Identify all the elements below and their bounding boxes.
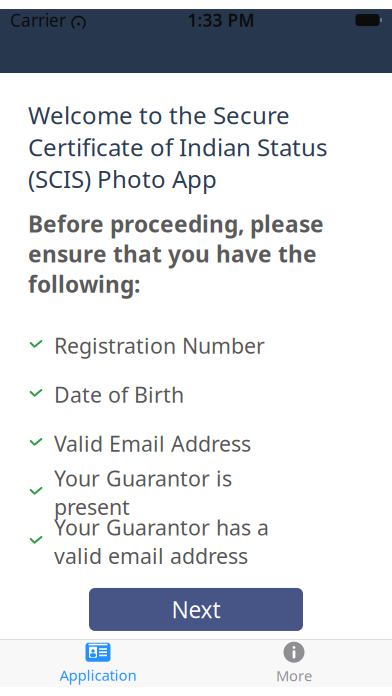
staticText: Before proceeding, please ensure that yo… bbox=[28, 209, 324, 299]
staticText: More bbox=[276, 666, 312, 685]
button[interactable]: More bbox=[196, 640, 392, 687]
staticText: Valid Email Address bbox=[54, 429, 251, 458]
button[interactable]: Next bbox=[89, 588, 303, 631]
staticText: Welcome to the Secure Certificate of Ind… bbox=[28, 99, 327, 195]
staticText: Next bbox=[171, 594, 220, 624]
staticText: Carrier bbox=[10, 8, 66, 31]
staticText bbox=[66, 8, 71, 31]
button[interactable]: Application bbox=[0, 640, 196, 687]
staticText: Date of Birth bbox=[54, 380, 184, 409]
staticText: Registration Number bbox=[54, 331, 265, 360]
staticText: 1:33 PM bbox=[187, 8, 254, 31]
staticText: Your Guarantor has a valid email address bbox=[54, 513, 269, 570]
staticText: Application bbox=[59, 665, 136, 685]
staticText: Your Guarantor is present bbox=[54, 464, 232, 521]
